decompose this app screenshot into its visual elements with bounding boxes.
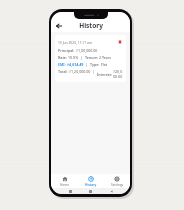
staticText: Interest: — [97, 72, 113, 77]
staticText: | — [91, 69, 97, 74]
staticText: 10.0% — [68, 55, 79, 60]
staticText: Total: — [58, 69, 69, 74]
staticText: ₹4,614.49 — [67, 62, 84, 67]
button[interactable]: Home — [89, 190, 92, 193]
staticText: Settings — [111, 183, 124, 187]
staticText: Flat — [101, 62, 108, 67]
staticText: ₹1,20,000.00 — [69, 69, 91, 74]
staticText: Type: — [90, 62, 101, 67]
staticText: EMI: — [58, 62, 67, 67]
button[interactable]: Delete — [116, 38, 123, 45]
button[interactable]: History — [78, 174, 104, 188]
staticText: 2 Years — [99, 55, 112, 60]
button[interactable]: Home — [51, 174, 78, 188]
staticText: | — [84, 62, 90, 67]
staticText: History — [85, 183, 97, 187]
staticText: ₹20,000.00 — [113, 69, 123, 79]
staticText: Tenure: — [85, 55, 99, 60]
button[interactable]: Settings — [104, 174, 130, 188]
staticText: ₹1,00,000.00 — [76, 48, 98, 53]
staticText: 15 Jun 2023, 11:11 am — [58, 40, 92, 44]
button[interactable]: Back — [53, 20, 64, 31]
staticText: | — [79, 55, 85, 60]
staticText: Principal: — [58, 48, 76, 53]
staticText: Home — [60, 183, 70, 187]
button[interactable]: Back — [110, 190, 113, 193]
button[interactable]: 15 Jun 2023, 11:11 am — [55, 35, 126, 82]
staticText: History — [79, 21, 103, 30]
staticText: Rate: — [58, 55, 68, 60]
